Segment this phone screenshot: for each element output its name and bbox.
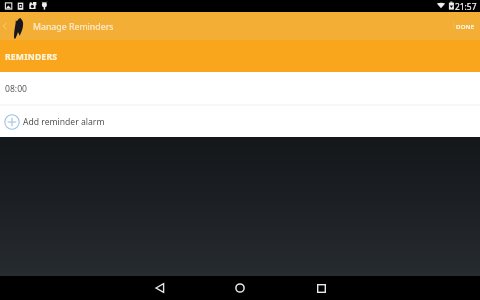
staticText: REMINDERS — [5, 51, 58, 63]
button[interactable]: 08:00 — [0, 72, 480, 104]
button[interactable]: Home — [217, 276, 263, 300]
button[interactable]: Add reminder alarm — [0, 106, 480, 137]
staticText: 08:00 — [5, 83, 27, 95]
staticText: 21:57 — [455, 1, 477, 12]
staticText: Add reminder alarm — [23, 116, 105, 128]
button[interactable]: Recent apps — [298, 276, 344, 300]
button[interactable]: Back — [137, 276, 183, 300]
button[interactable]: Navigate up — [0, 12, 33, 40]
staticText: Manage Reminders — [33, 21, 114, 33]
button[interactable]: DONE — [447, 12, 480, 40]
staticText: DONE — [456, 22, 475, 30]
